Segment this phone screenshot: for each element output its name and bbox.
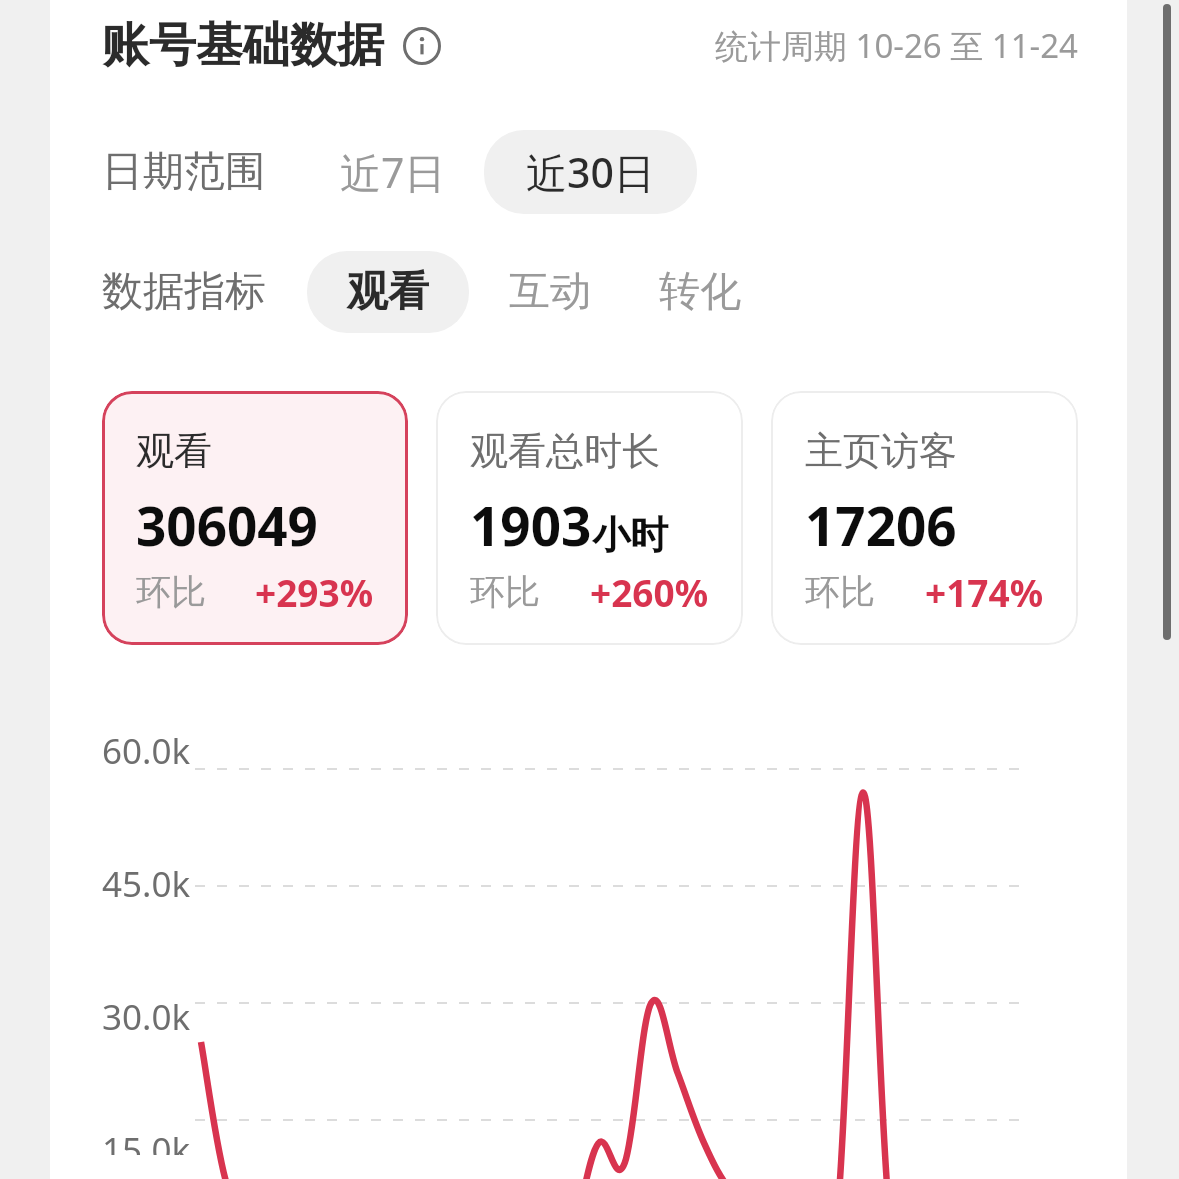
staticText: 环比 bbox=[805, 570, 875, 614]
staticText: 环比 bbox=[470, 570, 540, 614]
staticText: 主页访客 bbox=[805, 427, 957, 475]
button[interactable]: 转化 bbox=[637, 251, 763, 333]
button[interactable]: 主页访客 bbox=[771, 391, 1078, 645]
staticText: 近30日 bbox=[526, 144, 655, 200]
staticText: 账号基础数据 bbox=[102, 16, 384, 75]
staticText: +260% bbox=[590, 567, 709, 617]
staticText: 45.0k bbox=[102, 860, 191, 910]
staticText: 数据指标 bbox=[102, 266, 266, 318]
button[interactable]: 说明 bbox=[402, 26, 442, 66]
staticText: 15.0k bbox=[102, 1126, 191, 1155]
staticText: 17206 bbox=[805, 489, 957, 561]
staticText: 互动 bbox=[509, 266, 591, 318]
button[interactable]: 观看总时长 bbox=[436, 391, 743, 645]
staticText: 30.0k bbox=[102, 993, 191, 1043]
button[interactable]: 近7日 bbox=[318, 130, 468, 214]
button[interactable]: 观看 bbox=[307, 251, 469, 333]
staticText: 转化 bbox=[659, 266, 741, 318]
staticText: 日期范围 bbox=[102, 146, 266, 198]
staticText: 小时 bbox=[592, 511, 668, 559]
staticText: 环比 bbox=[136, 570, 206, 614]
staticText: 观看 bbox=[136, 427, 212, 475]
staticText: 60.0k bbox=[102, 727, 191, 777]
staticText: 306049 bbox=[136, 489, 318, 561]
staticText: +174% bbox=[925, 567, 1044, 617]
button[interactable]: 互动 bbox=[487, 251, 613, 333]
staticText: 统计周期 10-26 至 11-24 bbox=[715, 23, 1078, 68]
staticText: +293% bbox=[255, 567, 374, 617]
button[interactable]: 观看 bbox=[102, 391, 408, 645]
staticText: 观看 bbox=[347, 266, 429, 318]
staticText: 近7日 bbox=[340, 144, 446, 200]
staticText: 1903 bbox=[470, 489, 592, 561]
button[interactable]: 近30日 bbox=[484, 130, 697, 214]
staticText: 观看总时长 bbox=[470, 427, 660, 475]
